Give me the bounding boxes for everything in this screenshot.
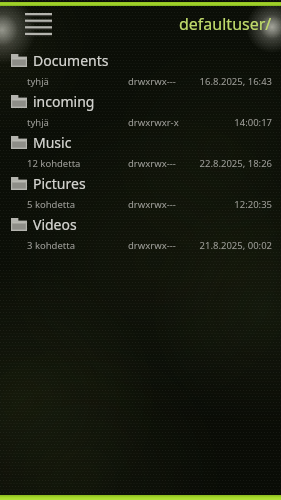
- staticText: Music: [33, 133, 72, 152]
- staticText: 3 kohdetta: [27, 239, 75, 252]
- staticText: 22.8.2025, 18:26: [199, 157, 272, 170]
- staticText: 12:20:35: [234, 198, 272, 211]
- staticText: 5 kohdetta: [27, 198, 75, 211]
- staticText: Videos: [33, 215, 77, 234]
- staticText: drwxrwx---: [128, 157, 176, 170]
- staticText: 21.8.2025, 00:02: [199, 239, 272, 252]
- staticText: drwxrwxr-x: [128, 116, 179, 129]
- staticText: defaultuser/: [179, 13, 272, 35]
- staticText: 16.8.2025, 16:43: [199, 75, 272, 88]
- staticText: 12 kohdetta: [27, 157, 81, 170]
- staticText: drwxrwx---: [128, 198, 176, 211]
- button[interactable]: Pictures: [0, 173, 281, 214]
- button[interactable]: Menu: [18, 7, 58, 41]
- staticText: incoming: [33, 92, 95, 111]
- staticText: drwxrwx---: [128, 75, 176, 88]
- staticText: tyhjä: [27, 75, 49, 88]
- staticText: 14:00:17: [234, 116, 272, 129]
- staticText: Pictures: [33, 174, 86, 193]
- staticText: Documents: [33, 51, 109, 70]
- staticText: drwxrwx---: [128, 239, 176, 252]
- button[interactable]: incoming: [0, 91, 281, 132]
- staticText: tyhjä: [27, 116, 49, 129]
- button[interactable]: Documents: [0, 50, 281, 91]
- button[interactable]: Music: [0, 132, 281, 173]
- button[interactable]: Videos: [0, 214, 281, 255]
